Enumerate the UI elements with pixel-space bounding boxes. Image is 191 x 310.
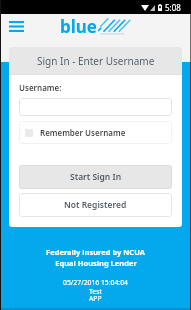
staticText: Username: bbox=[19, 82, 62, 93]
staticText: blue bbox=[60, 15, 98, 38]
staticText: Start Sign In bbox=[70, 171, 122, 183]
staticText: 05/27/2016 15:04:04 bbox=[63, 278, 128, 287]
staticText: Test bbox=[89, 287, 102, 296]
button[interactable]: Not Registered bbox=[19, 193, 172, 217]
staticText: APP bbox=[89, 294, 102, 303]
staticText: 5:08 bbox=[165, 2, 181, 13]
button[interactable]: Start Sign In bbox=[19, 165, 172, 189]
staticText: Not Registered bbox=[64, 199, 127, 211]
staticText: Sign In - Enter Username bbox=[37, 54, 155, 68]
staticText: Equal Housing Lender bbox=[55, 258, 137, 268]
staticText: Remember Username bbox=[40, 127, 126, 138]
button[interactable]: Open navigation menu bbox=[5, 16, 27, 37]
staticText: Federally insured by NCUA bbox=[46, 247, 145, 257]
button[interactable]: Username input field bbox=[19, 98, 172, 116]
button[interactable]: Remember Username bbox=[19, 121, 172, 144]
